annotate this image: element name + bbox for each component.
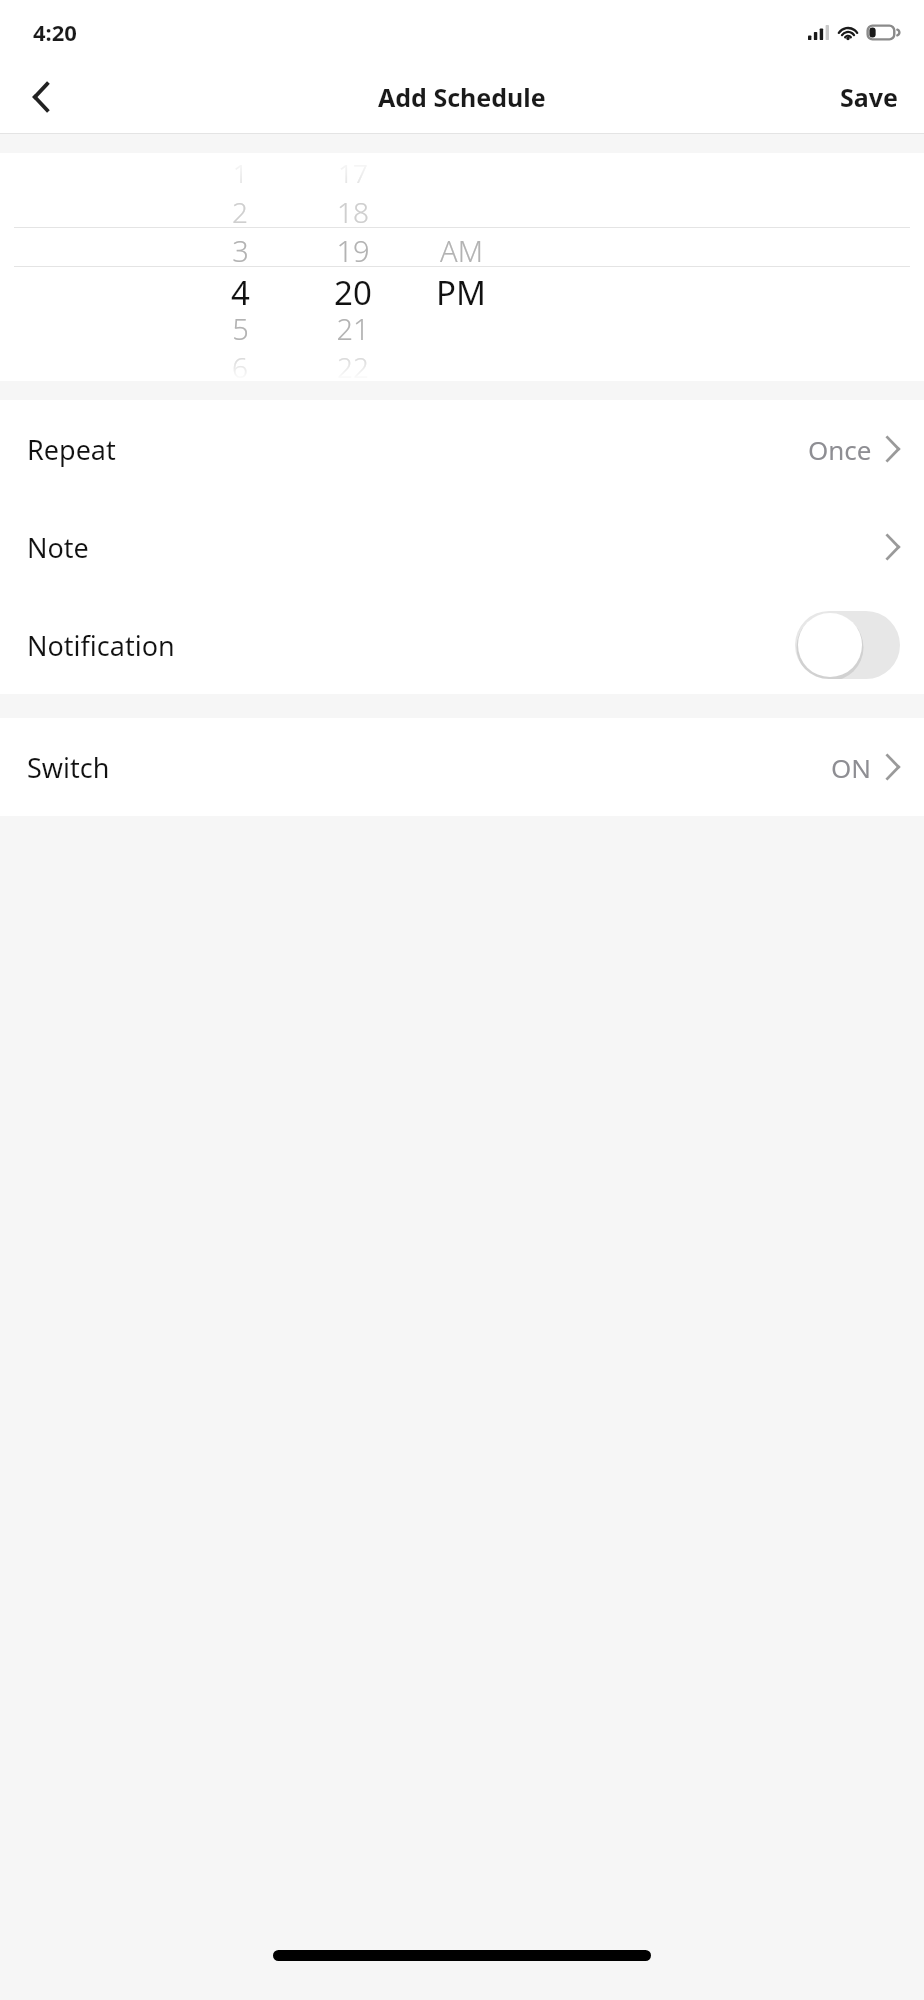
- staticText: PM: [436, 270, 486, 309]
- button[interactable]: 1: [180, 153, 300, 381]
- button[interactable]: Back: [8, 65, 72, 129]
- staticText: Add Schedule: [378, 80, 546, 114]
- staticText: 4: [231, 270, 250, 309]
- staticText: Once: [808, 432, 872, 467]
- button[interactable]: Repeat: [0, 400, 924, 498]
- staticText: 17: [338, 155, 368, 190]
- staticText: Repeat: [27, 431, 116, 468]
- button[interactable]: Note: [0, 498, 924, 596]
- button[interactable]: AM: [401, 153, 521, 381]
- staticText: ON: [831, 750, 872, 785]
- staticText: Note: [27, 529, 89, 566]
- staticText: 1: [233, 155, 248, 190]
- staticText: 20: [334, 270, 372, 309]
- staticText: 3: [232, 231, 249, 270]
- button[interactable]: Switch: [0, 718, 924, 816]
- staticText: 5: [232, 309, 249, 348]
- staticText: 4:20: [33, 17, 77, 47]
- button[interactable]: Notification toggle: [795, 611, 900, 679]
- button[interactable]: Save: [814, 68, 924, 126]
- staticText: 18: [337, 193, 369, 231]
- staticText: 2: [232, 193, 248, 231]
- button[interactable]: 17: [293, 153, 413, 381]
- staticText: 21: [336, 309, 370, 348]
- staticText: 22: [337, 348, 369, 381]
- staticText: AM: [440, 231, 483, 270]
- staticText: Save: [840, 80, 898, 114]
- staticText: 6: [232, 348, 248, 381]
- staticText: 19: [336, 231, 370, 270]
- staticText: Notification: [27, 627, 175, 664]
- staticText: Switch: [27, 749, 110, 786]
